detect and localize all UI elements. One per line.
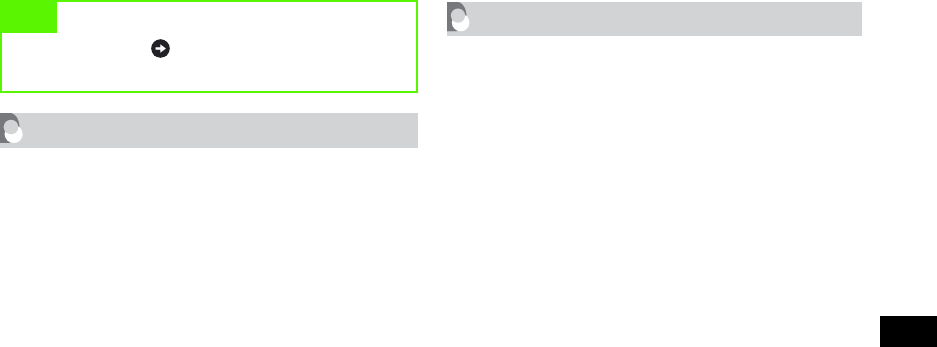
button[interactable]: Forward xyxy=(0,0,418,93)
other: Avatar placeholder xyxy=(447,2,469,36)
other: Avatar placeholder xyxy=(0,113,22,148)
button[interactable]: Avatar placeholder xyxy=(0,113,418,148)
button[interactable]: Avatar placeholder xyxy=(447,2,862,36)
button[interactable]: Forward xyxy=(151,39,170,58)
